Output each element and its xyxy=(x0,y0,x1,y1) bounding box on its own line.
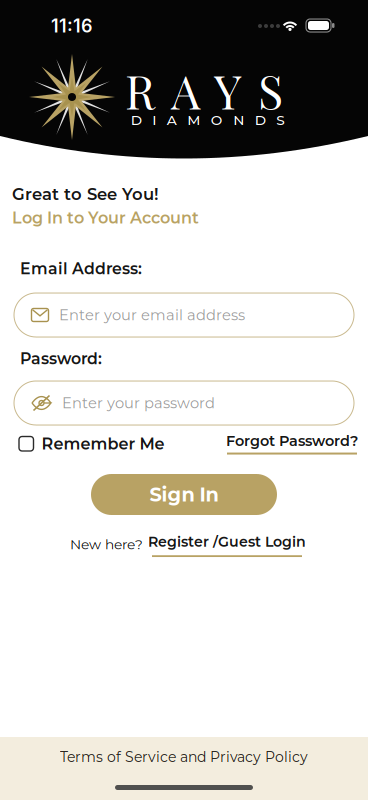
staticText: Terms of Service and Privacy Policy xyxy=(60,748,308,766)
button[interactable]: Forgot Password? xyxy=(226,432,358,455)
staticText: 11:16 xyxy=(51,15,93,37)
staticText: Remember Me xyxy=(41,434,164,453)
staticText: Great to See You! xyxy=(12,184,159,204)
button[interactable]: Remember Me xyxy=(19,434,164,453)
staticText: Log In to Your Account xyxy=(12,208,199,227)
staticText: New here? xyxy=(70,536,143,553)
button[interactable]: Register /Guest Login xyxy=(148,533,306,557)
button[interactable]: Enter your email address xyxy=(14,293,354,337)
button[interactable]: Enter your password xyxy=(14,381,354,425)
staticText: Enter your email address xyxy=(59,306,245,324)
button[interactable]: Sign In xyxy=(91,474,277,515)
button[interactable]: Terms of Service and Privacy Policy xyxy=(0,749,368,765)
staticText: RAYS xyxy=(125,59,283,121)
staticText: Register /Guest Login xyxy=(148,533,306,550)
staticText: Sign In xyxy=(149,483,218,506)
staticText: Email Address: xyxy=(20,259,142,278)
staticText: DIAMONDS xyxy=(131,112,285,128)
staticText: Forgot Password? xyxy=(226,432,358,450)
staticText: Enter your password xyxy=(62,394,215,412)
staticText: Password: xyxy=(20,349,102,368)
